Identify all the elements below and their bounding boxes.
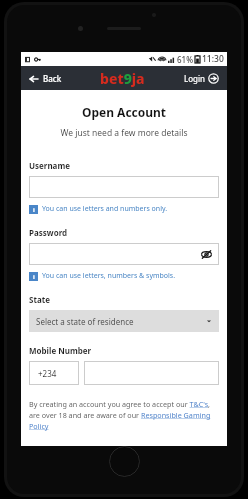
button[interactable]: +234	[29, 361, 79, 385]
staticText: State	[29, 294, 50, 305]
button[interactable]: Select a state of residence	[29, 310, 219, 332]
staticText: bet9ja	[100, 69, 145, 88]
staticText: Login	[184, 73, 205, 84]
button[interactable]: Back	[27, 70, 64, 87]
staticText: We just need a few more details	[29, 127, 219, 139]
staticText: Back	[43, 73, 62, 84]
button[interactable]	[84, 361, 219, 385]
staticText: i	[33, 273, 35, 281]
button[interactable]: Login	[182, 70, 221, 87]
button[interactable]: By creating an account you agree to acce…	[29, 399, 219, 431]
staticText: Username	[29, 160, 70, 171]
staticText: +234	[38, 368, 57, 379]
staticText: You can use letters and numbers only.	[42, 204, 168, 214]
button[interactable]: Show password	[200, 248, 212, 260]
staticText: Mobile Number	[29, 345, 92, 356]
button[interactable]: Show password	[29, 243, 219, 265]
staticText: Open Account	[29, 104, 219, 120]
button[interactable]	[29, 176, 219, 198]
staticText: i	[33, 206, 35, 214]
staticText: You can use letters, numbers & symbols.	[42, 271, 176, 281]
staticText: 11:30	[202, 53, 224, 65]
staticText: 61%	[177, 54, 193, 65]
staticText: Password	[29, 227, 68, 238]
staticText: Select a state of residence	[36, 316, 134, 327]
